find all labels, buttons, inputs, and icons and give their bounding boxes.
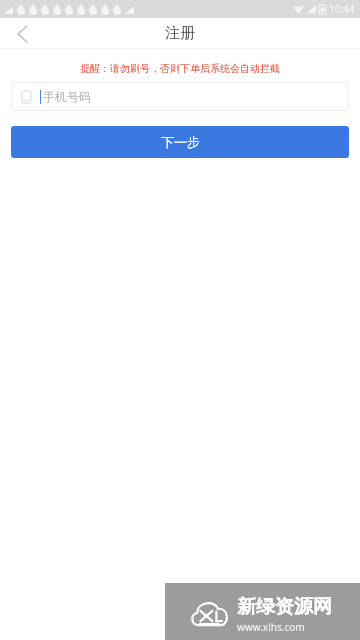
staticText: 10:44: [329, 2, 355, 16]
staticText: 下一步: [161, 134, 200, 150]
staticText: 提醒：请勿刷号，否则下单后系统会自动拦截: [0, 62, 360, 75]
button[interactable]: 下一步: [11, 126, 349, 158]
staticText: 新绿资源网: [237, 595, 332, 619]
button[interactable]: 手机号码: [11, 82, 349, 111]
staticText: www.xlhs.com: [237, 620, 305, 634]
staticText: 注册: [165, 24, 195, 43]
button[interactable]: Back: [0, 18, 44, 49]
staticText: 手机号码: [43, 89, 91, 104]
